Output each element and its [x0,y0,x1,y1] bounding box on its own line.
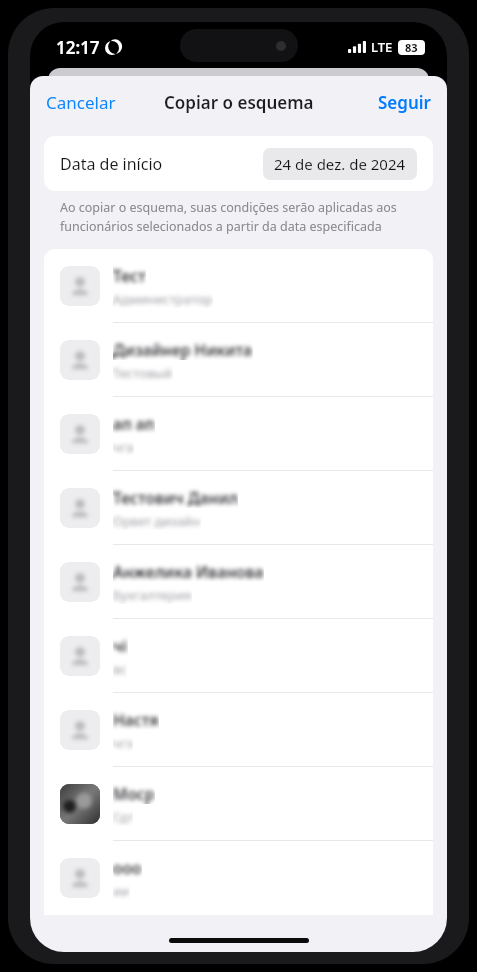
staticText: Бухгалтерия [113,586,192,604]
button[interactable]: Тестович Данил [44,471,433,545]
button[interactable]: Анжелика Иванова [44,545,433,619]
staticText: чі [113,635,128,656]
staticText: Seguir [378,91,431,114]
button[interactable]: Seguir [366,85,443,120]
button[interactable]: ап ап [44,397,433,471]
staticText: LTE [371,38,393,56]
staticText: Администратор [113,290,213,308]
staticText: Дизайнер Никита [113,339,253,360]
button[interactable]: Data de início [44,136,433,191]
staticText: 83 [405,40,418,55]
staticText: Орвет дизайн [113,512,201,530]
staticText: ооо [113,857,142,878]
staticText: Cancelar [46,91,116,114]
staticText: Гдт [113,808,133,826]
staticText: 24 de dez. de 2024 [274,154,406,174]
staticText: Настя [113,709,159,730]
staticText: ап ап [113,413,155,434]
staticText: Тестовый [113,364,173,382]
button[interactable]: Тест [44,249,433,323]
button[interactable]: Настя [44,693,433,767]
staticText: чга [113,438,134,456]
staticText: Анжелика Иванова [113,561,264,582]
staticText: Ao copiar o esquema, suas condições serã… [60,199,417,235]
staticText: Тестович Данил [113,487,238,508]
button[interactable]: Дизайнер Никита [44,323,433,397]
button[interactable]: чі [44,619,433,693]
button[interactable]: ооо [44,841,433,915]
staticText: Моср [113,783,155,804]
staticText: чгэ [113,734,133,752]
staticText: Copiar o esquema [164,91,314,114]
staticText: 12:17 [56,36,100,59]
button[interactable]: Моср [44,767,433,841]
button[interactable]: Cancelar [34,85,128,120]
staticText: ии [113,882,130,900]
staticText: вс [113,660,127,678]
staticText: Data de início [60,153,163,175]
staticText: Тест [113,265,146,286]
